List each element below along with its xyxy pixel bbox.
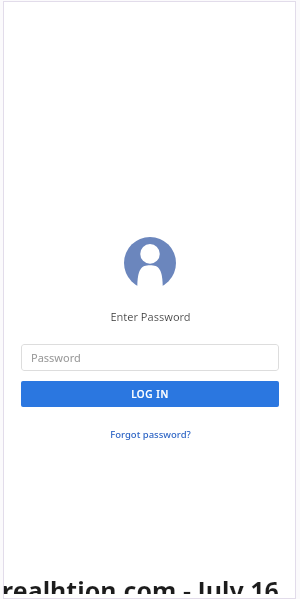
button[interactable]: Password (21, 344, 279, 371)
staticText: LOG IN (131, 387, 169, 401)
staticText: Password (31, 350, 81, 365)
staticText: Enter Password (110, 309, 191, 324)
button[interactable]: Forgot password? (104, 425, 197, 444)
staticText: Forgot password? (110, 428, 191, 441)
button[interactable]: LOG IN (21, 381, 279, 407)
staticText: realhtion.com - July 16, 2024 (0, 578, 294, 594)
other: User avatar (124, 237, 176, 289)
